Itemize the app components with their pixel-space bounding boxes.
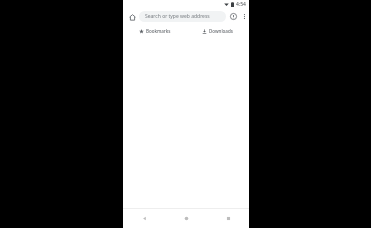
button[interactable]: Page info	[228, 11, 239, 22]
staticText: 4:54	[236, 1, 246, 8]
button[interactable]: Back	[123, 209, 165, 228]
staticText: Bookmarks	[146, 28, 171, 34]
button[interactable]: Bookmarks	[136, 26, 174, 36]
staticText: Search or type web address	[145, 13, 210, 20]
button[interactable]: Recents	[207, 209, 249, 228]
button[interactable]: More options	[239, 11, 249, 22]
button[interactable]: Home	[165, 209, 207, 228]
staticText: Downloads	[209, 28, 233, 34]
button[interactable]: Search or type web address	[139, 11, 226, 22]
button[interactable]: Downloads	[199, 26, 236, 36]
button[interactable]: Home	[126, 11, 138, 23]
